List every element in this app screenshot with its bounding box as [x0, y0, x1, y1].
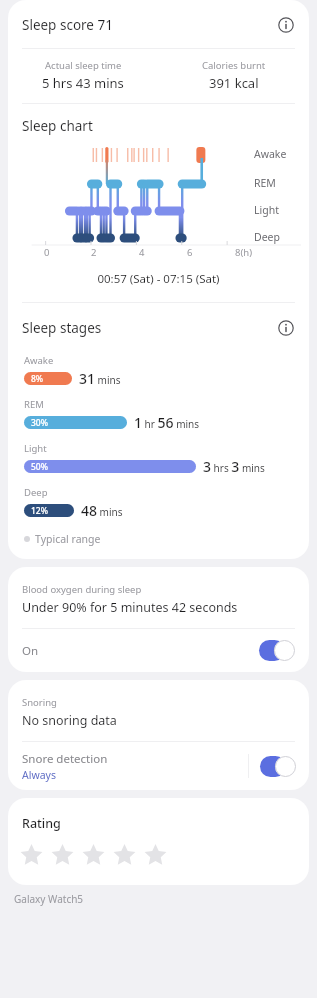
button[interactable]: Toggle, on: [259, 640, 295, 661]
staticText: 00:57 (Sat) - 07:15 (Sat): [8, 271, 309, 287]
staticText: Light: [254, 203, 279, 217]
staticText: Sleep score 71: [22, 16, 273, 34]
button[interactable]: Toggle, on: [260, 756, 296, 777]
button[interactable]: REM: [8, 393, 309, 437]
staticText: Light: [24, 442, 47, 455]
staticText: Snore detection: [22, 751, 108, 767]
staticText: 8%: [31, 373, 44, 385]
staticText: 4: [139, 246, 145, 259]
button[interactable]: Rate 4 stars: [109, 840, 140, 871]
staticText: Typical range: [35, 532, 101, 546]
staticText: 5 hrs 43 mins: [42, 74, 124, 92]
button[interactable]: Deep: [8, 481, 309, 525]
staticText: 50%: [31, 461, 48, 473]
button[interactable]: Rate 3 stars: [78, 840, 109, 871]
staticText: 31 mins: [79, 369, 121, 388]
staticText: On: [22, 643, 259, 659]
staticText: Actual sleep time: [45, 59, 122, 72]
staticText: No snoring data: [22, 712, 117, 729]
staticText: Awake: [254, 147, 287, 161]
staticText: Calories burnt: [202, 59, 266, 72]
staticText: 6: [187, 246, 193, 259]
button[interactable]: Awake: [8, 349, 309, 393]
staticText: Sleep chart: [22, 117, 93, 135]
staticText: REM: [254, 176, 276, 190]
button[interactable]: Information: [273, 315, 299, 341]
button[interactable]: Blood oxygen during sleep: [8, 567, 309, 628]
staticText: Blood oxygen during sleep: [22, 583, 142, 596]
button[interactable]: Snoring: [8, 680, 309, 741]
staticText: 8(h): [235, 246, 253, 259]
staticText: Under 90% for 5 minutes 42 seconds: [22, 599, 238, 616]
button[interactable]: On: [8, 629, 309, 672]
button[interactable]: Sleep score 71: [8, 0, 309, 48]
staticText: 391 kcal: [209, 74, 259, 92]
button[interactable]: Rate 5 stars: [140, 840, 171, 871]
button[interactable]: Light: [8, 437, 309, 481]
staticText: Deep: [24, 486, 48, 499]
staticText: Always: [22, 768, 56, 782]
staticText: Deep: [254, 230, 280, 244]
button[interactable]: Information: [273, 12, 299, 38]
button[interactable]: Rate 1 stars: [16, 840, 47, 871]
staticText: Snoring: [22, 696, 57, 709]
staticText: Awake: [24, 354, 54, 367]
staticText: 48 mins: [81, 501, 123, 520]
staticText: 2: [91, 246, 97, 259]
staticText: 1 hr 56 mins: [134, 413, 200, 432]
staticText: Rating: [22, 815, 61, 832]
staticText: Sleep stages: [22, 319, 273, 337]
staticText: Galaxy Watch5: [14, 892, 84, 906]
button[interactable]: Sleep stages: [8, 303, 309, 347]
staticText: 12%: [31, 505, 48, 517]
button[interactable]: Snore detection: [8, 751, 248, 782]
button[interactable]: Rate 2 stars: [47, 840, 78, 871]
staticText: 30%: [31, 417, 48, 429]
staticText: REM: [24, 398, 44, 411]
staticText: 3 hrs 3 mins: [203, 457, 265, 476]
staticText: 0: [44, 246, 50, 259]
